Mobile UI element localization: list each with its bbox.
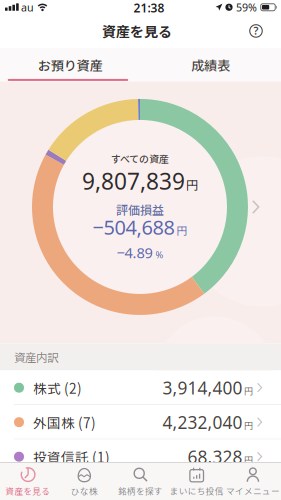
staticText: 21:38 (133, 0, 164, 16)
staticText: 68,328 (187, 445, 242, 468)
staticText: 円 (176, 222, 187, 238)
staticText: 59% (236, 0, 257, 14)
button[interactable]: 成績表 (140, 48, 281, 81)
button[interactable]: まいにち投信 (169, 464, 225, 500)
staticText: 資産を見る (6, 485, 51, 497)
button[interactable]: 外国株 (7) (0, 405, 281, 439)
button[interactable]: すべての資産 (0, 81, 281, 343)
staticText: 株式 (2) (33, 378, 82, 398)
staticText: au (21, 0, 34, 14)
staticText: 4,232,040 (162, 411, 242, 434)
staticText: % (155, 248, 163, 261)
button[interactable]: 資産を見る (0, 464, 56, 500)
staticText: マイメニュー (226, 485, 280, 497)
staticText: 銘柄を探す (118, 485, 163, 497)
staticText: 9,807,839 (82, 166, 185, 196)
button[interactable]: マイメニュー (225, 464, 281, 500)
staticText: 3,914,400 (162, 376, 242, 399)
staticText: すべての資産 (111, 151, 169, 166)
staticText: お預り資産 (38, 55, 103, 74)
staticText: −4.89 (116, 243, 152, 262)
button[interactable]: ひな株 (56, 464, 112, 500)
staticText: 円 (244, 418, 253, 431)
staticText: 評価損益 (116, 201, 164, 218)
staticText: ? (253, 24, 258, 38)
button[interactable]: お預り資産 (0, 48, 140, 81)
staticText: 円 (186, 176, 198, 193)
staticText: 資産内訳 (14, 349, 58, 365)
staticText: まいにち投信 (170, 485, 224, 497)
staticText: −504,688 (92, 214, 174, 240)
button[interactable]: ヘルプ (241, 15, 271, 47)
staticText: 円 (244, 384, 253, 397)
staticText: 外国株 (7) (33, 412, 96, 432)
staticText: 成績表 (191, 55, 230, 74)
staticText: ひな株 (71, 485, 98, 497)
button[interactable]: 銘柄を探す (112, 464, 169, 500)
staticText: 資産を見る (102, 21, 172, 41)
button[interactable]: 株式 (2) (0, 370, 281, 405)
button[interactable]: 投資信託 (1) (0, 439, 281, 462)
staticText: 投資信託 (1) (33, 447, 110, 467)
staticText: 円 (244, 453, 253, 466)
